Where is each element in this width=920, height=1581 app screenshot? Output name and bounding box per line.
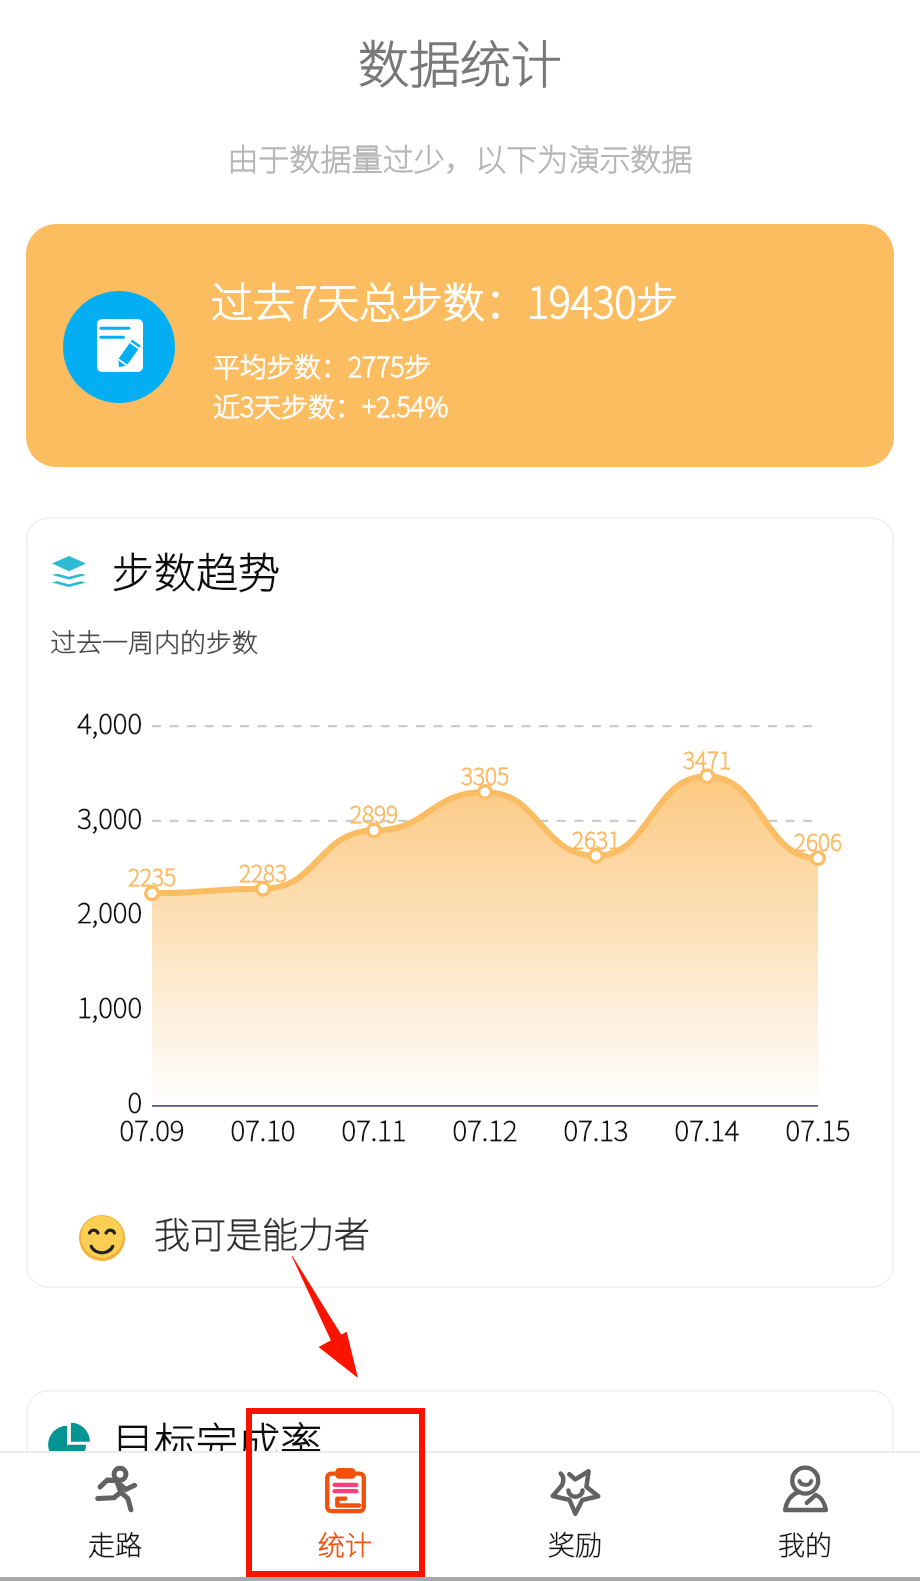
staticText: 过去一周内的步数 — [50, 622, 259, 660]
staticText: 步数趋势 — [112, 539, 281, 600]
staticText: 07.14 — [647, 1109, 767, 1150]
staticText: 奖励 — [548, 1524, 602, 1563]
staticText: 2606 — [758, 824, 878, 857]
button[interactable]: Walk — [0, 1452, 230, 1577]
staticText: 我的 — [778, 1524, 832, 1563]
staticText: 3,000 — [4, 797, 142, 838]
staticText: 07.15 — [758, 1109, 878, 1150]
staticText: 07.09 — [92, 1109, 212, 1150]
button[interactable]: Statistics — [230, 1452, 460, 1577]
staticText: 统计 — [318, 1524, 372, 1563]
staticText: 3471 — [647, 742, 767, 775]
staticText: 走路 — [88, 1524, 142, 1563]
staticText: 07.11 — [314, 1109, 434, 1150]
staticText: 2899 — [314, 796, 434, 829]
staticText: 2235 — [92, 859, 212, 892]
staticText: 2283 — [203, 855, 323, 888]
staticText: 我可是能力者 — [154, 1206, 371, 1258]
staticText: 2631 — [536, 822, 656, 855]
staticText: 07.12 — [425, 1109, 545, 1150]
button[interactable]: Rewards — [460, 1452, 690, 1577]
staticText: 07.13 — [536, 1109, 656, 1150]
staticText: 4,000 — [4, 702, 142, 743]
staticText: 0 — [4, 1081, 142, 1122]
button[interactable]: Mine — [690, 1452, 920, 1577]
staticText: 目标完成率 — [112, 1409, 323, 1470]
staticText: 07.10 — [203, 1109, 323, 1150]
other: Statistics — [319, 1466, 372, 1519]
staticText: 近3天步数：+2.54% — [213, 386, 449, 425]
other: Walk — [89, 1466, 142, 1519]
staticText: 3305 — [425, 758, 545, 791]
staticText: 1,000 — [4, 986, 142, 1027]
button[interactable]: 过去7天总步数：19430步 — [26, 224, 894, 467]
staticText: 过去7天总步数：19430步 — [211, 269, 679, 330]
other: Rewards — [549, 1466, 602, 1519]
staticText: 2,000 — [4, 891, 142, 932]
other: Mine — [779, 1466, 832, 1519]
staticText: 平均步数：2775步 — [213, 346, 432, 385]
staticText: 由于数据量过少，以下为演示数据 — [0, 135, 920, 180]
staticText: 数据统计 — [0, 24, 920, 98]
